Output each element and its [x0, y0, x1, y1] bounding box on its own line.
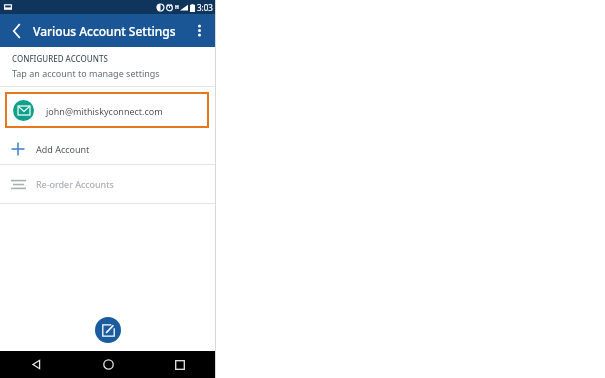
- button[interactable]: john@mithiskyconnect.com: [5, 92, 209, 128]
- button[interactable]: Add Account: [0, 133, 216, 164]
- staticText: H: [175, 4, 179, 11]
- button[interactable]: Navigate up: [0, 14, 33, 47]
- staticText: 3:03: [197, 2, 213, 13]
- button[interactable]: Compose: [95, 317, 121, 343]
- button[interactable]: More options: [183, 14, 216, 47]
- staticText: john@mithiskyconnect.com: [46, 105, 163, 117]
- staticText: Various Account Settings: [33, 23, 176, 39]
- button[interactable]: Recent apps: [144, 351, 216, 378]
- button[interactable]: Re-order Accounts: [0, 165, 216, 203]
- staticText: Tap an account to manage settings: [12, 67, 160, 79]
- button[interactable]: Back: [0, 351, 72, 378]
- staticText: Add Account: [36, 143, 90, 155]
- button[interactable]: Home: [72, 351, 144, 378]
- staticText: Re-order Accounts: [36, 178, 114, 190]
- staticText: CONFIGURED ACCOUNTS: [12, 53, 108, 64]
